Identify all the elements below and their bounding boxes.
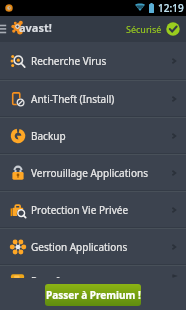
staticText: Passer à Premium ! <box>46 288 141 302</box>
staticText: Pare-feu <box>31 274 71 278</box>
button[interactable]: Verrouillage Applications <box>0 155 186 190</box>
staticText: Gestion Applications <box>31 240 128 254</box>
button[interactable]: Sécurisé <box>126 22 180 36</box>
staticText: avast! <box>19 20 52 35</box>
staticText: Recherche Virus <box>31 54 107 68</box>
staticText: 12:19 <box>158 1 184 15</box>
staticText: Verrouillage Applications <box>31 166 148 180</box>
button[interactable]: Passer à Premium ! <box>45 284 141 306</box>
button[interactable]: Pare-feu <box>0 266 186 278</box>
staticText: Protection Vie Privée <box>31 203 129 217</box>
button[interactable]: Gestion Applications <box>0 229 186 264</box>
button[interactable]: Menu <box>0 16 10 42</box>
button[interactable]: Recherche Virus <box>0 42 186 79</box>
button[interactable]: Protection Vie Privée <box>0 192 186 227</box>
staticText: Backup <box>31 129 66 143</box>
staticText: Anti-Theft (Install) <box>31 92 115 106</box>
button[interactable]: Anti-Theft (Install) <box>0 81 186 116</box>
button[interactable]: Backup <box>0 118 186 153</box>
staticText: Sécurisé <box>126 23 162 35</box>
